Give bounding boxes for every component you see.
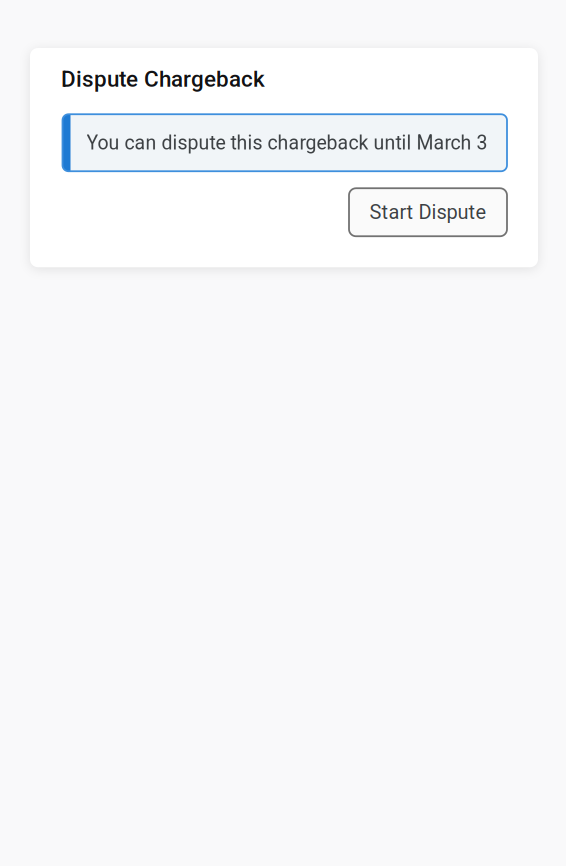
staticText: Start Dispute — [369, 200, 486, 224]
button[interactable]: Start Dispute — [349, 188, 507, 236]
staticText: You can dispute this chargeback until Ma… — [86, 131, 487, 154]
staticText: Dispute Chargeback — [61, 66, 265, 92]
